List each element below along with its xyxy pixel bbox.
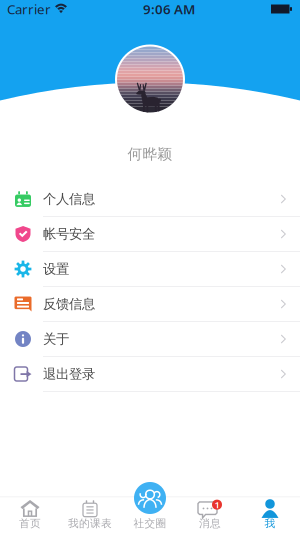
staticText: 我的课表 (68, 517, 112, 530)
button[interactable]: 关于 (0, 322, 300, 357)
button[interactable]: 帐号安全 (0, 217, 300, 252)
button[interactable]: 我的课表 (60, 497, 120, 533)
staticText: 退出登录 (43, 366, 95, 382)
button[interactable]: 首页 (0, 497, 60, 533)
staticText: 消息 (199, 517, 221, 530)
staticText: 关于 (43, 331, 69, 347)
button[interactable]: 个人信息 (0, 182, 300, 217)
staticText: 1 (214, 498, 219, 511)
button[interactable]: 1 (180, 497, 240, 533)
staticText: 设置 (43, 261, 69, 277)
staticText: 9:06 AM (143, 0, 195, 18)
button[interactable]: 反馈信息 (0, 287, 300, 322)
button[interactable]: 社交圈 (120, 497, 180, 533)
button[interactable]: 退出登录 (0, 357, 300, 392)
staticText: 首页 (19, 517, 41, 530)
staticText: 帐号安全 (43, 226, 95, 242)
button[interactable]: 设置 (0, 252, 300, 287)
button[interactable]: 社交圈 (134, 482, 166, 514)
staticText: 个人信息 (43, 191, 95, 207)
staticText: 反馈信息 (43, 296, 95, 312)
staticText: 我 (264, 517, 275, 530)
staticText: 社交圈 (133, 517, 166, 530)
staticText: 何晔颖 (127, 145, 172, 163)
staticText: Carrier (7, 0, 51, 18)
button[interactable]: 我 (240, 497, 300, 533)
